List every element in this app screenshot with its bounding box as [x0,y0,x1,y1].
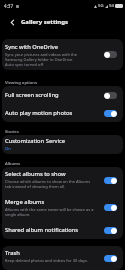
button[interactable]: Auto play motion photos [2,104,123,122]
staticText: 4:37 [4,3,14,9]
button[interactable]: Full screen scrolling [2,86,123,104]
button[interactable]: Toggle [104,51,117,58]
staticText: Albums with the same name will be shown … [5,207,94,217]
staticText: 5G [98,3,104,9]
button[interactable]: Sync with OneDrive [2,39,123,70]
staticText: Keep deleted photos and videos for 30 da… [5,258,89,263]
staticText: Customization Service [5,137,66,145]
button[interactable]: Trash [2,246,123,270]
button[interactable]: Toggle [104,92,117,99]
staticText: Gallery settings [21,18,69,26]
staticText: Viewing options [5,80,37,86]
button[interactable]: Customization Service [2,135,123,154]
button[interactable]: Back [6,16,18,28]
staticText: Sync your pictures and videos with the S… [5,52,78,67]
button[interactable]: Toggle [104,177,117,184]
staticText: Merge albums [5,198,45,206]
staticText: Stories [5,129,19,135]
button[interactable]: Toggle [104,110,117,117]
button[interactable]: Merge albums [2,194,123,221]
staticText: Auto play motion photos [5,109,73,117]
button[interactable]: Toggle [104,204,117,211]
button[interactable]: Shared album notifications [2,221,123,239]
button[interactable]: Toggle [104,255,117,262]
staticText: Choose which albums to show on the Album… [5,179,91,189]
staticText: 94 [109,3,114,9]
staticText: Full screen scrolling [5,91,59,99]
staticText: On [5,146,11,152]
staticText: Albums [5,161,21,167]
staticText: Shared album notifications [5,226,79,234]
button[interactable]: Select albums to show [2,167,123,194]
button[interactable]: Toggle [104,227,117,234]
staticText: Sync with OneDrive [5,43,58,51]
staticText: Trash [5,249,20,257]
staticText: Select albums to show [5,170,66,178]
